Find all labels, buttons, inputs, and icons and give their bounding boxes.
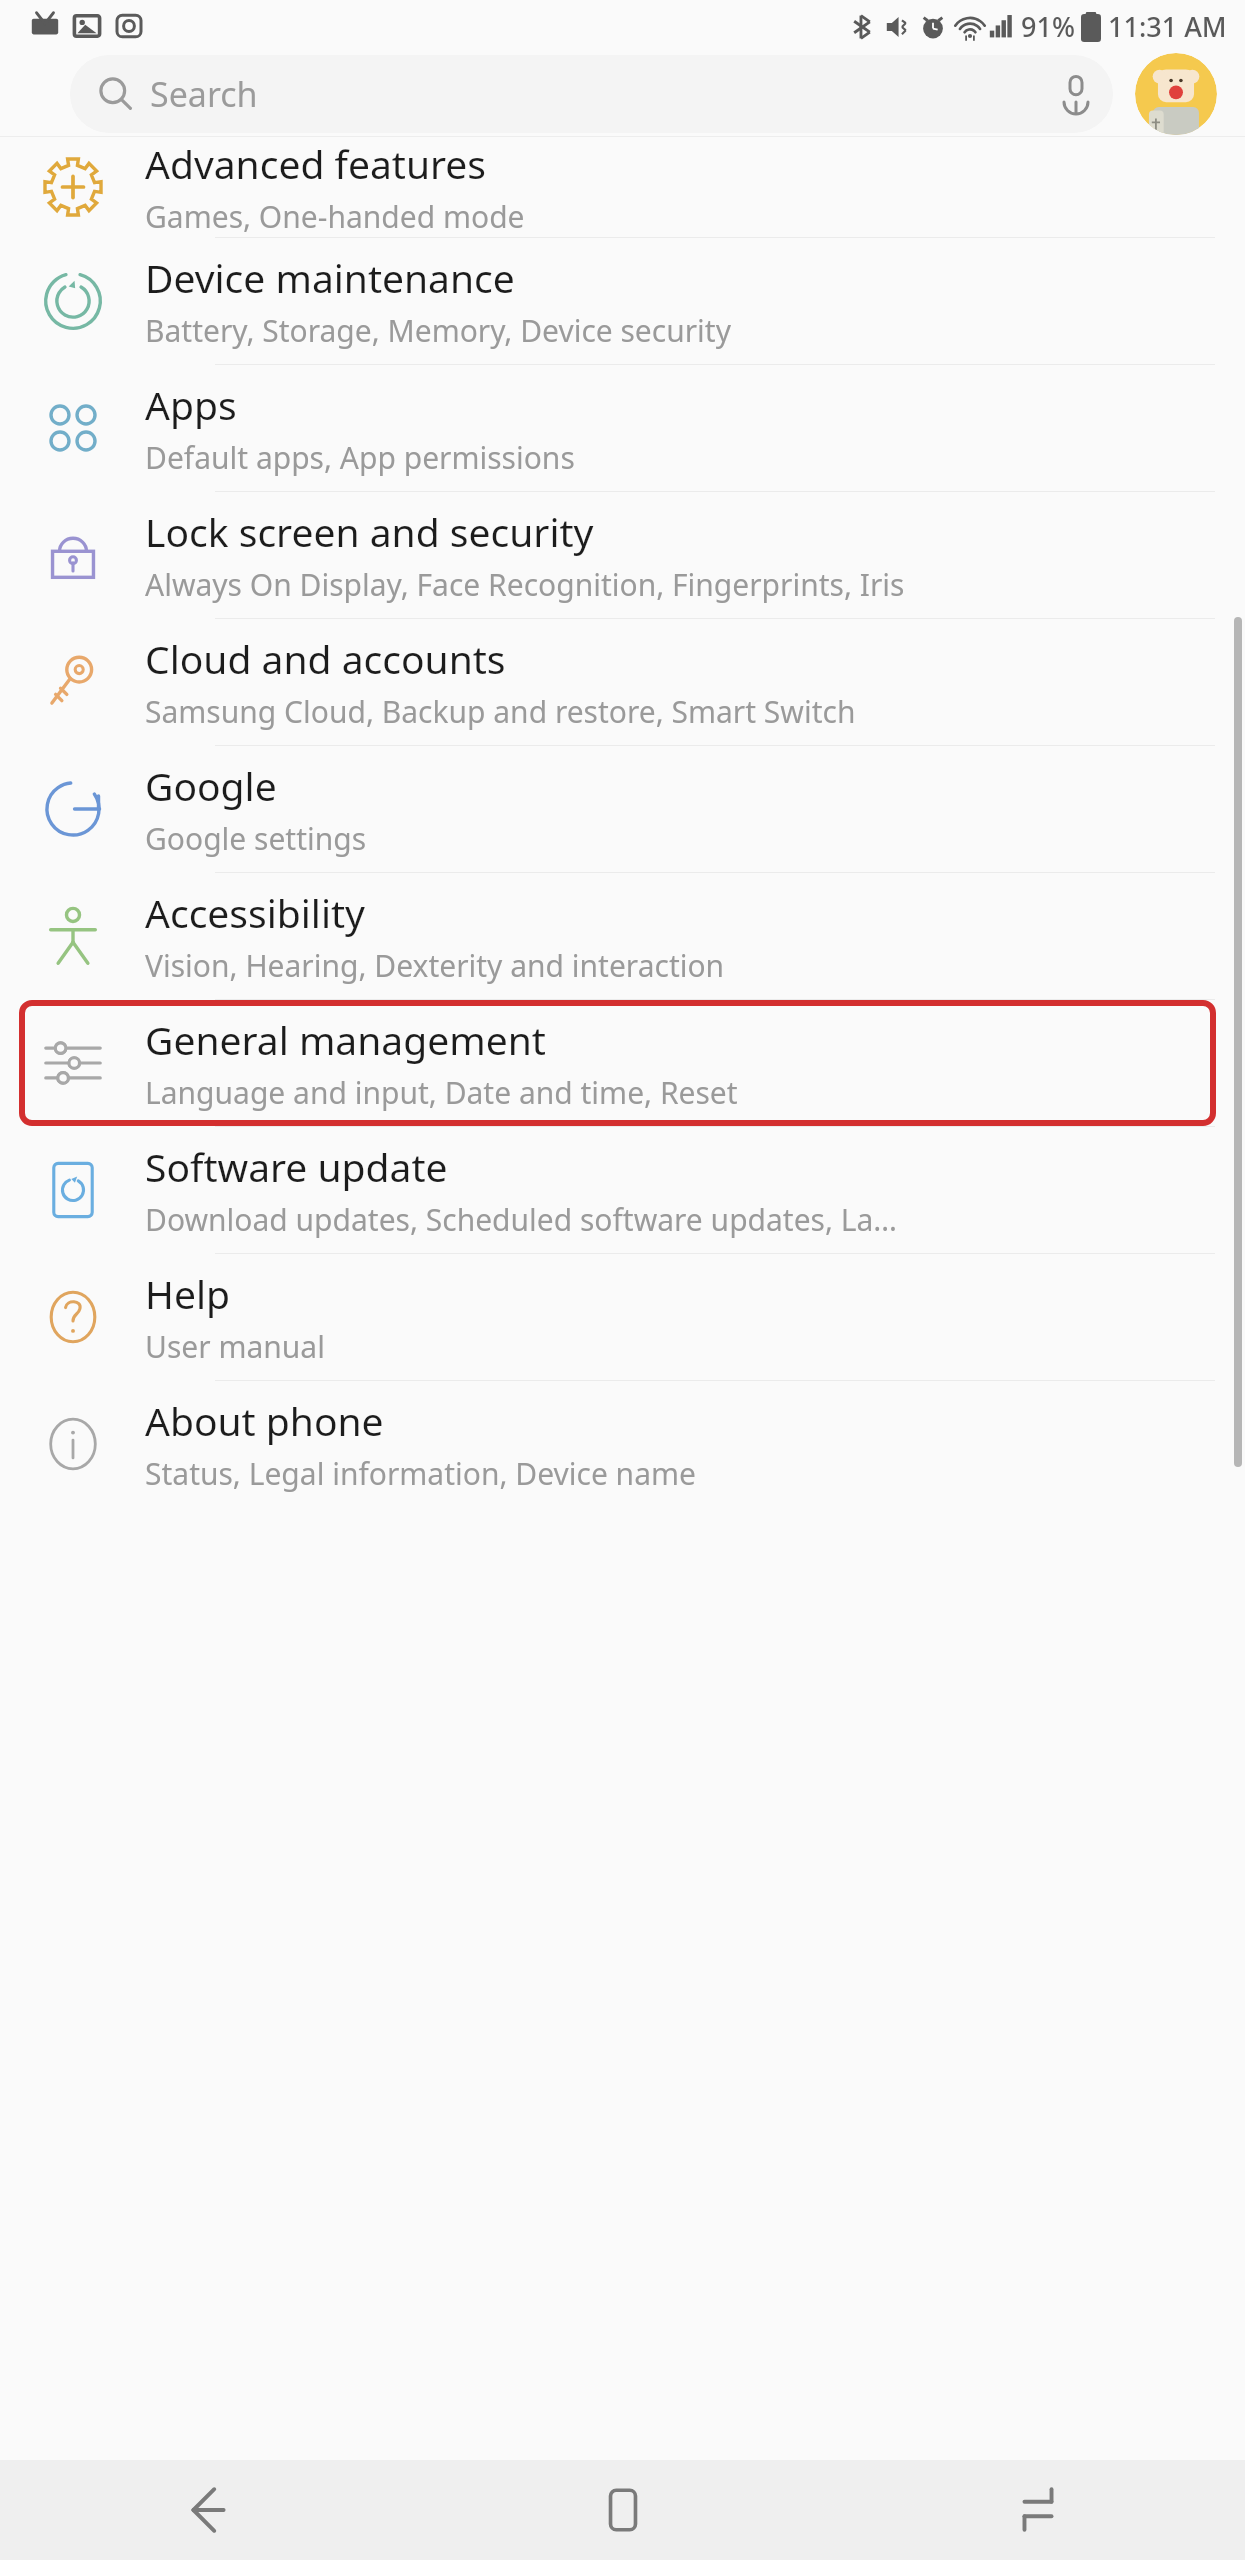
staticText: Search [150, 71, 1039, 117]
button[interactable]: Home [415, 2460, 830, 2560]
button[interactable]: Apps [0, 365, 1245, 491]
staticText: Download updates, Scheduled software upd… [145, 1199, 898, 1240]
staticText: Status, Legal information, Device name [145, 1453, 696, 1494]
button[interactable]: Accessibility [0, 873, 1245, 999]
staticText: General management [145, 1013, 546, 1066]
button[interactable]: Search [70, 55, 1113, 133]
button[interactable]: About phone [0, 1381, 1245, 1507]
staticText: Language and input, Date and time, Reset [145, 1072, 738, 1113]
button[interactable]: Profile [1135, 53, 1217, 135]
staticText: Help [145, 1267, 230, 1320]
staticText: Cloud and accounts [145, 632, 506, 685]
staticText: Accessibility [145, 886, 365, 939]
button[interactable]: Google [0, 746, 1245, 872]
staticText: Games, One-handed mode [145, 196, 525, 237]
button[interactable]: Cloud and accounts [0, 619, 1245, 745]
staticText: Google [145, 759, 277, 812]
button[interactable]: Help [0, 1254, 1245, 1380]
staticText: User manual [145, 1326, 325, 1367]
button[interactable]: Software update [0, 1127, 1245, 1253]
button[interactable]: Recents [830, 2460, 1245, 2560]
staticText: Samsung Cloud, Backup and restore, Smart… [145, 691, 856, 732]
button[interactable]: Advanced features [0, 137, 1245, 237]
staticText: About phone [145, 1394, 384, 1447]
staticText: Default apps, App permissions [145, 437, 575, 478]
staticText: 11:31 AM [1108, 8, 1227, 45]
button[interactable]: Back [0, 2460, 415, 2560]
staticText: Lock screen and security [145, 505, 594, 558]
button[interactable]: Lock screen and security [0, 492, 1245, 618]
button[interactable]: General management [0, 1000, 1245, 1126]
staticText: Device maintenance [145, 251, 515, 304]
staticText: Battery, Storage, Memory, Device securit… [145, 310, 731, 351]
staticText: Apps [145, 378, 237, 431]
staticText: Advanced features [145, 137, 487, 190]
staticText: Always On Display, Face Recognition, Fin… [145, 564, 905, 605]
staticText: Google settings [145, 818, 367, 859]
staticText: 91% [1021, 8, 1075, 45]
staticText: Vision, Hearing, Dexterity and interacti… [145, 945, 725, 986]
staticText: Software update [145, 1140, 448, 1193]
button[interactable]: Device maintenance [0, 238, 1245, 364]
button[interactable]: Voice search [1039, 57, 1113, 131]
